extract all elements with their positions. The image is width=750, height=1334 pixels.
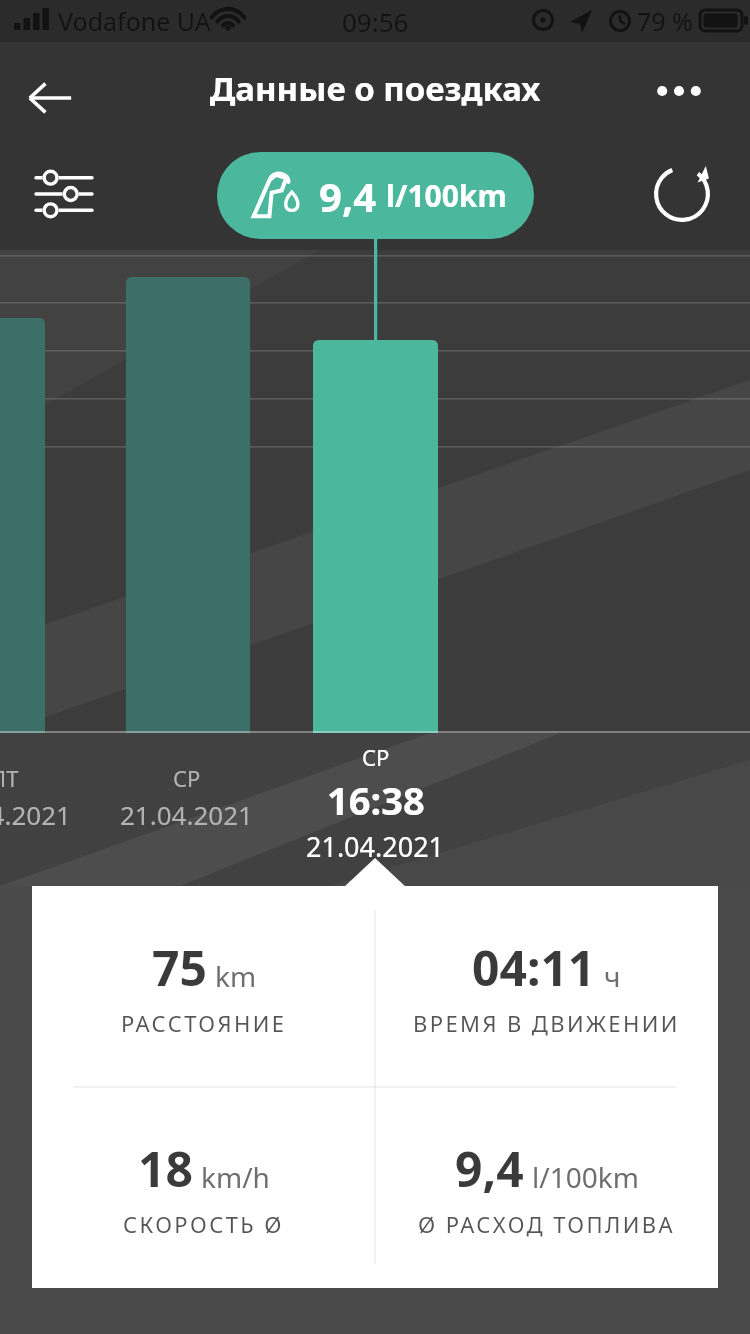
button[interactable]: Back: [8, 56, 92, 140]
staticText: 9,4: [455, 1136, 524, 1201]
button[interactable]: СР: [60, 763, 312, 832]
button[interactable]: Refresh: [638, 150, 726, 238]
staticText: 79 %: [637, 4, 693, 38]
staticText: km: [215, 957, 257, 995]
staticText: 20.04.2021: [0, 797, 71, 832]
staticText: l/100km: [532, 1158, 639, 1196]
staticText: 04:11: [472, 935, 596, 1000]
staticText: ч: [604, 957, 621, 995]
button[interactable]: 75: [121, 935, 287, 1038]
staticText: 21.04.2021: [306, 828, 445, 865]
button[interactable]: 04:11: [413, 935, 680, 1038]
button[interactable]: СР: [248, 742, 502, 865]
staticText: 75: [152, 935, 207, 1000]
staticText: ВРЕМЯ В ДВИЖЕНИИ: [413, 1008, 680, 1038]
staticText: Данные о поездках: [0, 66, 750, 111]
staticText: СР: [173, 763, 201, 793]
staticText: Ø РАСХОД ТОПЛИВА: [418, 1209, 675, 1239]
button[interactable]: Filter: [22, 152, 106, 236]
staticText: РАССТОЯНИЕ: [121, 1008, 287, 1038]
staticText: km/h: [201, 1158, 270, 1196]
staticText: ПТ: [0, 763, 19, 793]
staticText: l/100km: [386, 175, 507, 216]
staticText: 9,4: [319, 169, 377, 223]
staticText: Vodafone UA: [58, 4, 211, 38]
staticText: СКОРОСТЬ Ø: [123, 1209, 284, 1239]
staticText: 21.04.2021: [120, 797, 253, 832]
button[interactable]: 9,4: [217, 152, 534, 239]
staticText: 18: [138, 1136, 193, 1201]
button[interactable]: 9,4: [418, 1136, 675, 1239]
button[interactable]: 18: [123, 1136, 284, 1239]
button[interactable]: More options: [644, 56, 714, 126]
staticText: СР: [362, 742, 390, 772]
staticText: 16:38: [327, 774, 425, 826]
staticText: 09:56: [342, 4, 409, 39]
